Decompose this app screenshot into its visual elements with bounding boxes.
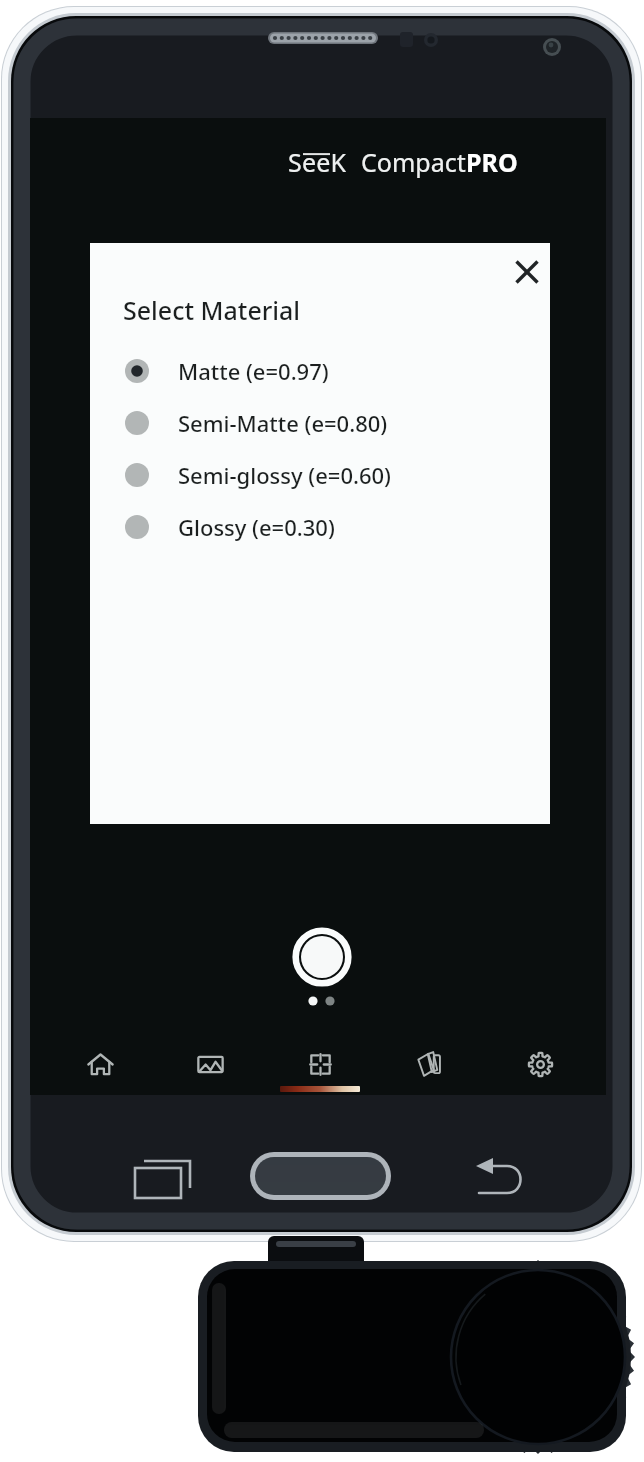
staticText: Compact <box>361 145 466 179</box>
button[interactable]: Back <box>455 1148 551 1206</box>
staticText: Semi-Matte (e=0.80) <box>178 408 388 438</box>
button[interactable]: Semi-Matte (e=0.80) <box>115 401 525 445</box>
button[interactable]: Close <box>503 248 551 296</box>
button[interactable]: Home <box>45 1024 155 1095</box>
staticText: SeeK <box>288 145 347 179</box>
button[interactable]: Glossy (e=0.30) <box>115 505 525 549</box>
staticText: Glossy (e=0.30) <box>178 512 335 542</box>
button[interactable]: Modes <box>265 1024 375 1095</box>
button[interactable]: Library <box>375 1024 485 1095</box>
button[interactable]: Matte (e=0.97) <box>115 349 525 393</box>
staticText: PRO <box>466 145 518 179</box>
staticText: Matte (e=0.97) <box>178 356 329 386</box>
button[interactable]: Gallery <box>155 1024 265 1095</box>
button[interactable]: Recent apps <box>110 1148 206 1206</box>
button[interactable]: Capture <box>287 922 357 992</box>
button[interactable]: Settings <box>485 1024 595 1095</box>
button[interactable]: Home <box>250 1152 391 1200</box>
staticText: Semi-glossy (e=0.60) <box>178 460 391 490</box>
button[interactable]: Semi-glossy (e=0.60) <box>115 453 525 497</box>
staticText: Select Material <box>123 293 301 327</box>
